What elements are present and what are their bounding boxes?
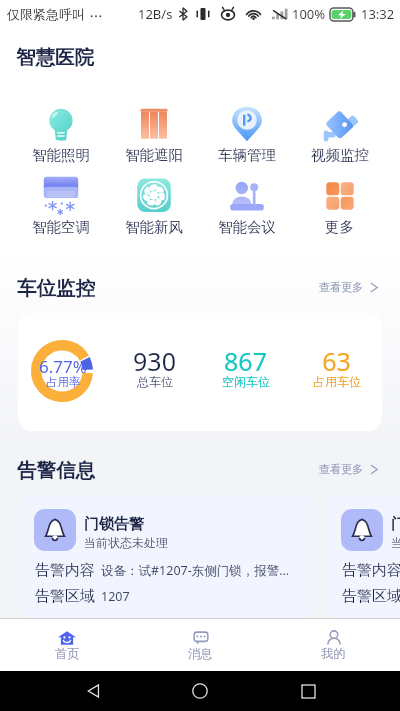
staticText: 总车位	[137, 374, 173, 389]
staticText: 门锁告警	[84, 515, 144, 534]
button[interactable]: 门锁告警	[326, 494, 400, 618]
staticText: 我的	[321, 646, 346, 661]
staticText: 查看更多	[319, 462, 363, 476]
staticText: 消息	[188, 646, 213, 661]
staticText: 当前状态未处理	[84, 535, 168, 550]
staticText: 占用率	[46, 375, 81, 389]
staticText: 智慧医院	[16, 45, 94, 70]
staticText: 867	[224, 344, 267, 378]
staticText: 告警区域	[35, 587, 95, 606]
staticText: 12B/s	[138, 5, 173, 23]
button[interactable]: Home	[185, 676, 215, 706]
staticText: 智能新风	[125, 218, 183, 236]
button[interactable]: 智能遮阳	[107, 104, 200, 164]
staticText: 首页	[55, 646, 80, 661]
staticText: 仅限紧急呼叫	[7, 6, 85, 22]
staticText: 车位监控	[17, 276, 95, 298]
button[interactable]: 智能会议	[200, 176, 293, 236]
staticText: 视频监控	[311, 146, 369, 164]
button[interactable]: 查看更多	[313, 277, 378, 297]
staticText: 告警内容	[342, 561, 400, 580]
button[interactable]: 智能新风	[107, 176, 200, 236]
button[interactable]: Recents	[293, 676, 323, 706]
staticText: 门锁告警	[391, 515, 400, 534]
button[interactable]: 智能照明	[14, 104, 107, 164]
button[interactable]: 门锁告警	[19, 494, 315, 618]
staticText: 当前状态未处理	[391, 535, 400, 550]
staticText: 设备：试#1207-东侧门锁，报警…	[101, 562, 290, 579]
button[interactable]: 车辆管理	[200, 104, 293, 164]
staticText: 空闲车位	[222, 374, 270, 389]
staticText: 智能空调	[32, 218, 90, 236]
button[interactable]: 智能空调	[14, 176, 107, 236]
button[interactable]: 首页	[0, 619, 134, 671]
staticText: 车辆管理	[218, 146, 276, 164]
staticText: 智能遮阳	[125, 146, 183, 164]
staticText: 100%	[292, 5, 326, 23]
staticText: 告警内容	[35, 561, 95, 580]
staticText: 智能照明	[32, 146, 90, 164]
staticText: 63	[322, 344, 351, 378]
staticText: 930	[133, 344, 176, 378]
staticText: 更多	[325, 218, 354, 236]
button[interactable]: 视频监控	[293, 104, 386, 164]
staticText: 告警信息	[17, 458, 95, 480]
staticText: 6.77%	[39, 355, 87, 378]
button[interactable]: 查看更多	[313, 459, 378, 479]
button[interactable]: 6.77%	[18, 313, 382, 431]
staticText: 13:32	[361, 5, 395, 23]
button[interactable]: 我的	[267, 619, 400, 671]
staticText: 1207	[101, 588, 130, 605]
staticText: 占用车位	[313, 374, 361, 389]
staticText: 告警区域	[342, 587, 400, 606]
staticText: 查看更多	[319, 280, 363, 294]
button[interactable]: Back	[78, 676, 108, 706]
button[interactable]: 消息	[134, 619, 267, 671]
button[interactable]: 更多	[293, 176, 386, 236]
staticText: 智能会议	[218, 218, 276, 236]
